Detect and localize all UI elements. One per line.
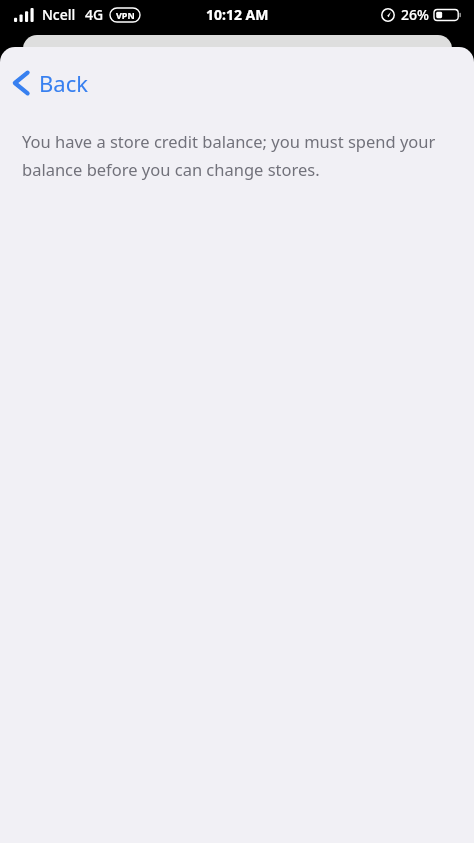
other: Back [10, 70, 32, 96]
staticText: 26% [401, 5, 429, 24]
staticText: You have a store credit balance; you mus… [22, 130, 444, 181]
staticText: 4G [85, 5, 104, 24]
button[interactable]: Back [10, 61, 88, 105]
staticText: Ncell [42, 5, 76, 24]
staticText: VPN [116, 9, 135, 21]
staticText: 10:12 AM [206, 5, 269, 24]
staticText: Back [39, 68, 88, 98]
